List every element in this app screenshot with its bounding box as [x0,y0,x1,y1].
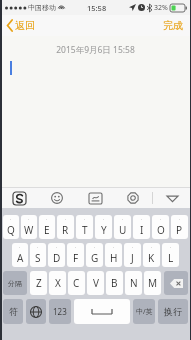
staticText: · [46,216,48,223]
button[interactable]: 符 [3,299,23,324]
staticText: · [94,244,96,251]
button[interactable]: · [124,243,141,267]
button[interactable]: 分隔 [3,271,27,295]
staticText: Y [101,223,107,237]
button[interactable]: B [106,271,123,295]
staticText: R [62,223,69,237]
button[interactable]: · [143,243,160,267]
button[interactable]: 换行 [158,299,188,324]
staticText: · [132,244,134,251]
button[interactable]: Z [30,271,47,295]
staticText: 分隔 [8,279,22,288]
staticText: · [170,244,172,251]
staticText: 返回 [15,19,35,32]
staticText: K [148,251,155,265]
staticText: · [179,216,181,223]
button[interactable]: · [171,215,188,239]
staticText: · [10,216,12,223]
button[interactable]: · [30,243,46,267]
staticText: · [84,216,86,223]
button[interactable]: · [3,215,19,239]
button[interactable]: · [105,243,122,267]
staticText: A [17,251,24,265]
button[interactable]: · [12,243,28,267]
button[interactable]: Switch language [26,299,46,324]
staticText: O [157,223,165,237]
button[interactable]: Backspace [164,271,188,295]
staticText: M [148,276,158,290]
button[interactable]: · [133,215,150,239]
staticText: · [141,216,143,223]
button[interactable]: Hide keyboard [153,188,191,208]
staticText: 完成 [163,19,183,32]
button[interactable]: · [67,243,84,267]
staticText: · [160,216,162,223]
button[interactable]: · [48,243,65,267]
staticText: 15:58 [87,3,107,13]
staticText: · [65,216,67,223]
staticText: · [151,244,153,251]
staticText: · [28,216,30,223]
button[interactable]: Sogou input [0,188,38,208]
button[interactable]: · [152,215,169,239]
button[interactable]: · [57,215,74,239]
button[interactable]: · [21,215,37,239]
button[interactable]: Settings [114,188,152,208]
button[interactable]: V [87,271,104,295]
staticText: G [91,251,99,265]
staticText: V [93,276,99,290]
staticText: S [35,251,41,265]
button[interactable]: Handwriting [76,188,114,208]
staticText: W [24,223,34,237]
staticText: 123 [53,306,67,317]
staticText: · [56,244,58,251]
staticText: 2015年9月6日 15:58 [56,44,135,56]
staticText: J [131,251,134,265]
button[interactable]: · [95,215,112,239]
button[interactable]: · [114,215,131,239]
staticText: F [73,251,79,265]
button[interactable]: M [144,271,161,295]
staticText: B [111,276,118,290]
button[interactable]: · [76,215,93,239]
staticText: · [37,244,39,251]
staticText: E [44,223,50,237]
staticText: Z [36,276,42,290]
staticText: · [75,244,77,251]
button[interactable]: C [68,271,85,295]
staticText: · [103,216,105,223]
staticText: 中/英 [136,307,153,317]
staticText: X [55,276,61,290]
staticText: P [176,223,183,237]
staticText: 换行 [164,306,182,317]
button[interactable]: · [86,243,103,267]
staticText: Q [7,223,15,237]
button[interactable]: 返回 [5,17,37,34]
staticText: I [140,223,144,237]
staticText: T [82,223,88,237]
button[interactable]: · [162,243,179,267]
staticText: · [113,244,115,251]
button[interactable]: 中/英 [133,299,155,324]
staticText: D [53,251,61,265]
staticText: · [122,216,124,223]
staticText: N [130,276,138,290]
button[interactable]: N [125,271,142,295]
button[interactable]: X [49,271,66,295]
staticText: 符 [9,306,18,317]
staticText: H [110,251,118,265]
staticText: 中国移动 [28,3,56,12]
staticText: U [119,223,127,237]
button[interactable]: · [39,215,55,239]
button[interactable]: 完成 [161,17,185,34]
button[interactable]: 123 [49,299,71,324]
staticText: C [73,276,80,290]
button[interactable]: Emoji [38,188,76,208]
staticText: · [19,244,21,251]
staticText: L [168,251,174,265]
button[interactable]: Space [74,299,130,324]
staticText: 32% [154,3,168,13]
